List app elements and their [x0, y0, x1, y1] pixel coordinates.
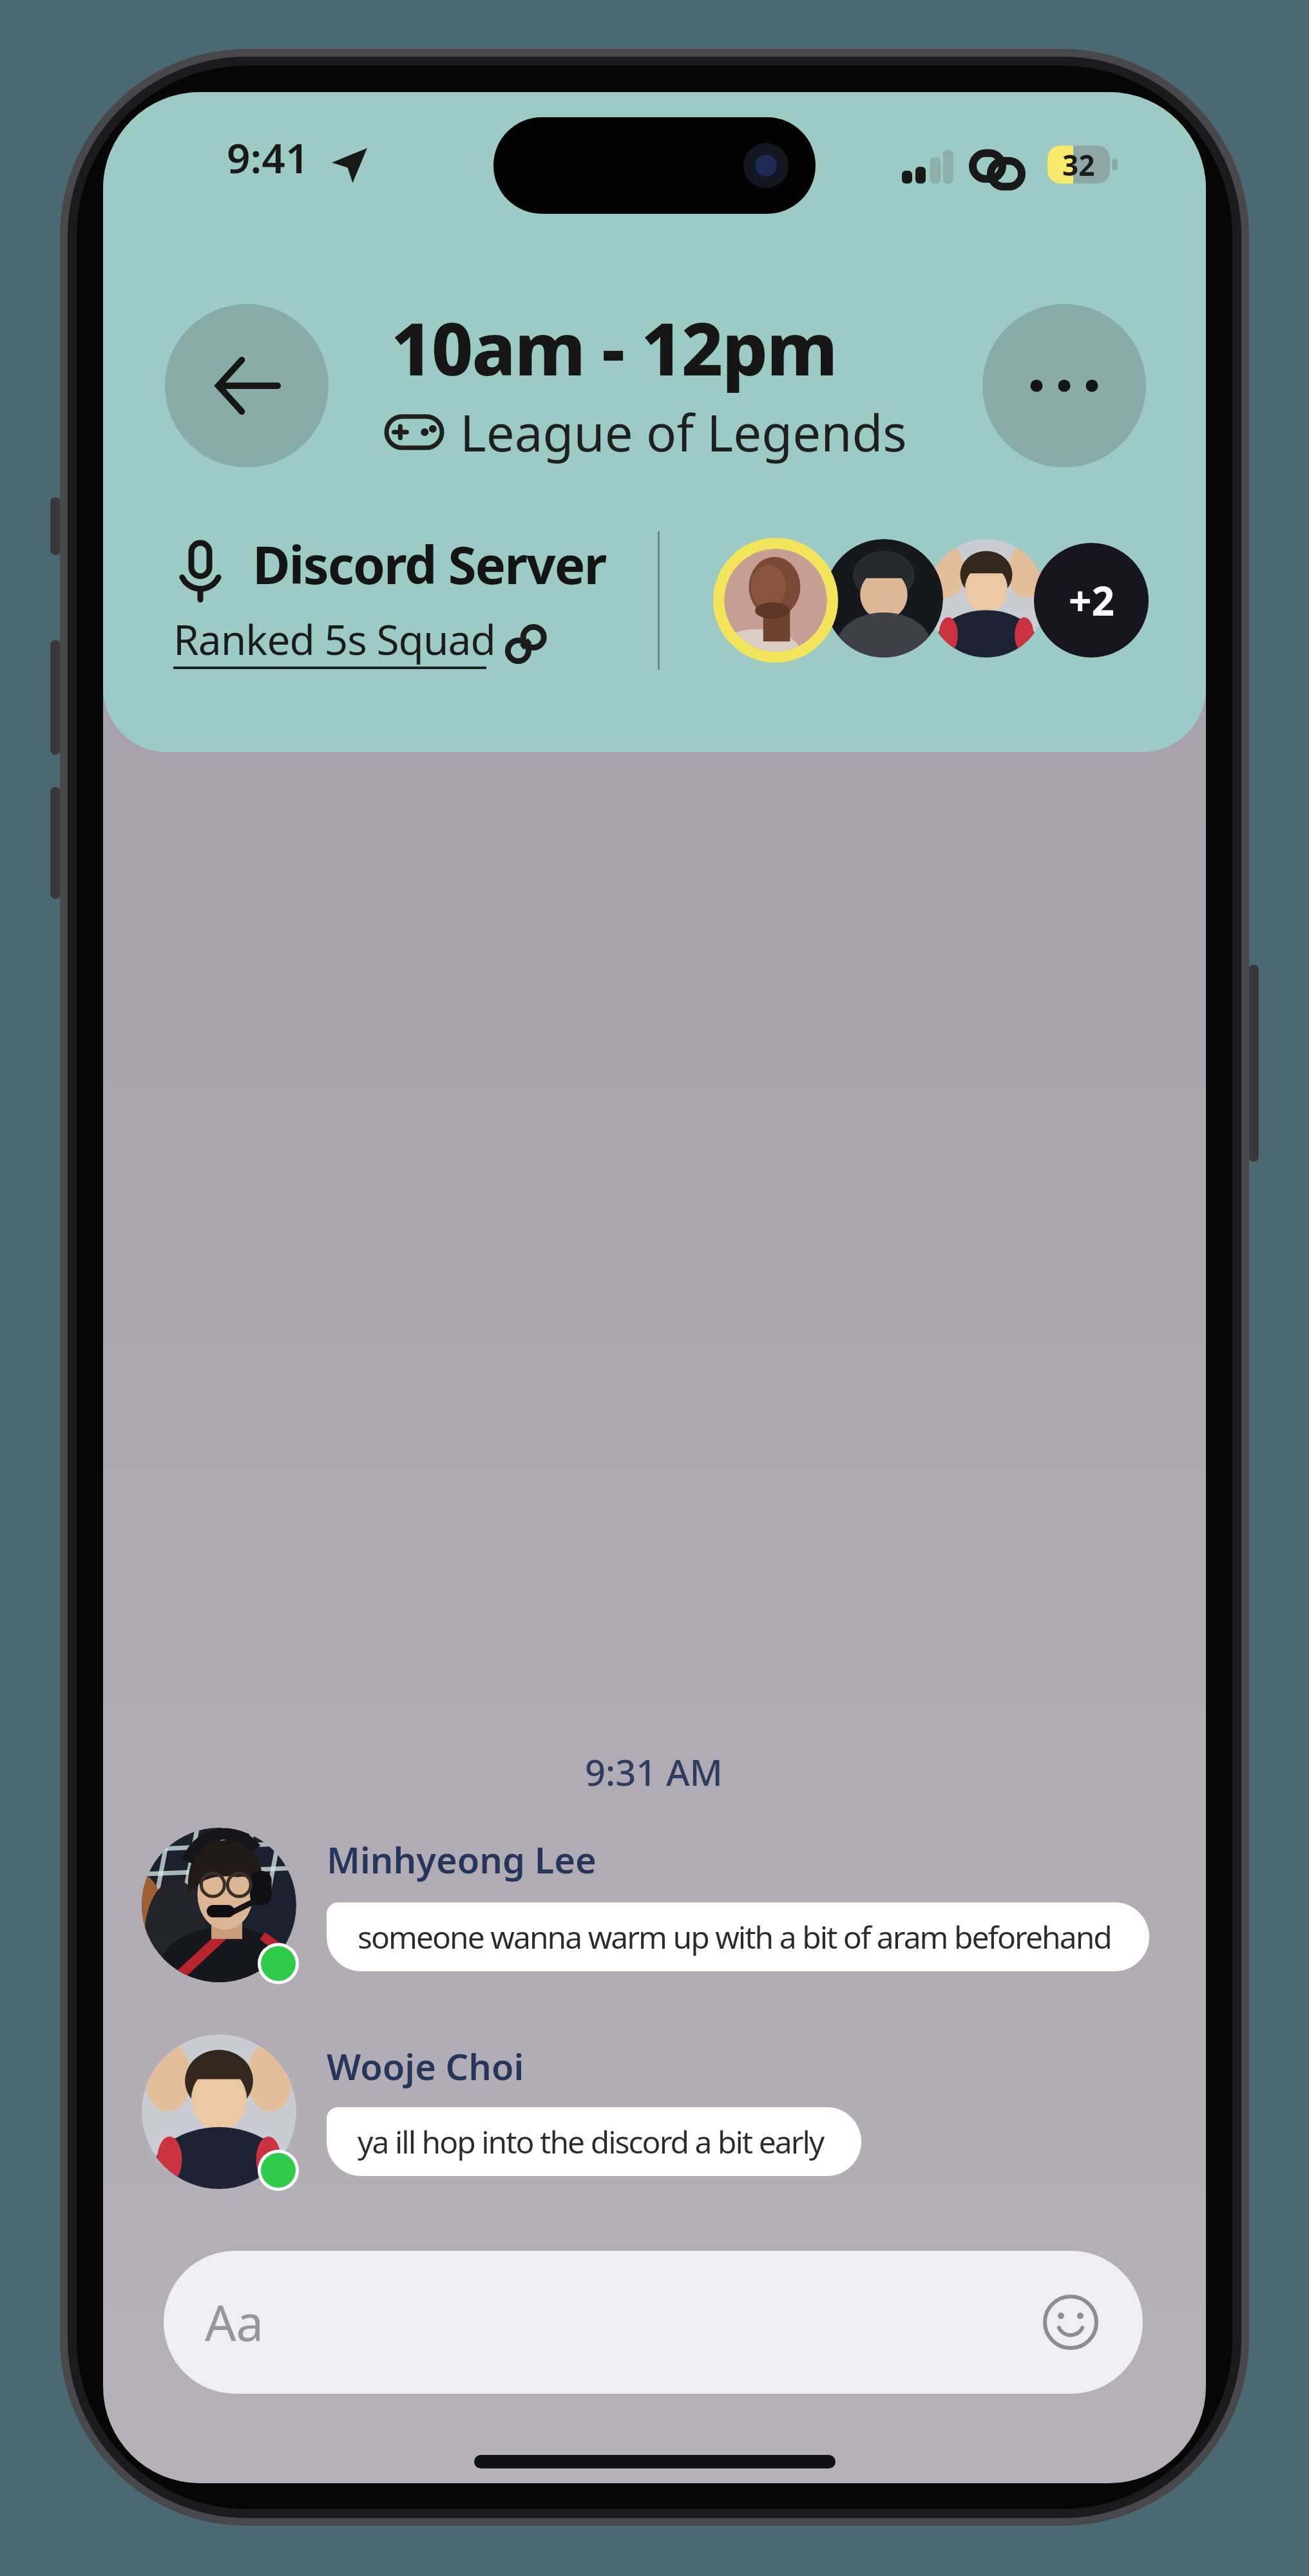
staticText: Ranked 5s Squad	[173, 611, 495, 667]
button[interactable]	[1042, 2294, 1099, 2351]
button[interactable]	[142, 2034, 296, 2189]
staticText: Wooje Choi	[327, 2041, 524, 2090]
staticText: +2	[1069, 573, 1114, 627]
button[interactable]: Ranked 5s Squad	[173, 611, 495, 667]
button[interactable]	[825, 539, 943, 658]
button[interactable]	[165, 304, 329, 468]
button[interactable]: +2	[1034, 543, 1149, 658]
staticText: League of Legends	[460, 398, 907, 466]
staticText: Aa	[205, 2289, 264, 2356]
button[interactable]	[927, 539, 1046, 658]
staticText: someone wanna warm up with a bit of aram…	[358, 1916, 1111, 1958]
staticText: ya ill hop into the discord a bit early	[358, 2121, 824, 2163]
button[interactable]	[142, 1828, 296, 1982]
staticText: 10am - 12pm	[391, 298, 837, 395]
staticText: Minhyeong Lee	[327, 1835, 597, 1884]
button[interactable]	[982, 304, 1146, 468]
staticText: 32	[1062, 146, 1095, 184]
button[interactable]: someone wanna warm up with a bit of aram…	[327, 1902, 1149, 1971]
staticText: 9:31 AM	[585, 1747, 723, 1792]
button[interactable]: Aa	[164, 2251, 1143, 2394]
button[interactable]	[713, 538, 838, 663]
staticText: 9:41	[227, 129, 309, 185]
button[interactable]: ya ill hop into the discord a bit early	[327, 2107, 861, 2176]
staticText: Discord Server	[253, 529, 606, 599]
